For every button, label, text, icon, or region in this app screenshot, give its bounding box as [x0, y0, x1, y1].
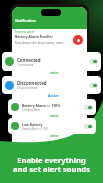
staticText: Service is active [15, 30, 34, 34]
staticText: active [50, 71, 59, 75]
staticText: Notification [15, 18, 36, 23]
staticText: Low Battery [22, 122, 43, 127]
staticText: Battery Alarm <= 30% [22, 127, 49, 131]
staticText: Connected [17, 63, 34, 67]
staticText: Keep always alert about battery status [15, 41, 64, 45]
staticText: Charging Alert [22, 108, 40, 112]
button[interactable]: Connected [2, 52, 101, 71]
staticText: active [50, 114, 59, 118]
button[interactable]: Battery Alarm >= 100% [8, 99, 96, 115]
staticText: active [50, 134, 59, 138]
button[interactable]: Toggle [89, 83, 98, 88]
staticText: Connected [17, 57, 41, 63]
staticText: Battery Alarm >= 100% [22, 103, 61, 108]
button[interactable]: Record [73, 35, 83, 45]
staticText: Battery Alarm Notifier [15, 34, 53, 39]
button[interactable]: Low Battery [8, 118, 96, 134]
staticText: Enable everything and set alert sounds [0, 155, 103, 174]
staticText: Disconnected [17, 86, 38, 90]
staticText: Active [48, 93, 59, 98]
staticText: Disconnected [17, 80, 47, 86]
button[interactable]: Toggle [84, 105, 93, 110]
button[interactable]: Toggle [84, 124, 93, 129]
button[interactable]: Toggle [89, 59, 98, 64]
button[interactable]: Disconnected [2, 76, 101, 94]
